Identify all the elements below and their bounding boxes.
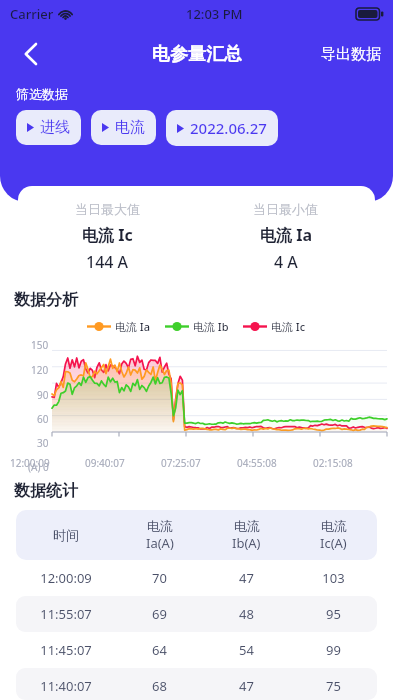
- staticText: 时间: [16, 527, 116, 543]
- staticText: 48: [203, 605, 290, 623]
- staticText: 09:40:07: [85, 456, 161, 470]
- staticText: 64: [116, 641, 203, 659]
- staticText: 数据分析: [14, 290, 78, 310]
- staticText: 95: [290, 605, 377, 623]
- staticText: 60: [37, 412, 49, 426]
- staticText: 47: [203, 677, 290, 691]
- button[interactable]: 进线: [16, 110, 81, 145]
- staticText: 12:03 PM: [186, 5, 243, 23]
- button[interactable]: 2022.06.27: [166, 110, 278, 146]
- staticText: 电参量汇总: [152, 43, 242, 66]
- button[interactable]: 导出数据: [309, 37, 393, 72]
- staticText: 99: [290, 641, 377, 659]
- staticText: 90: [37, 388, 49, 402]
- button[interactable]: 当日最大值: [18, 186, 375, 288]
- staticText: 12:00:09: [10, 456, 85, 470]
- staticText: 144 A: [86, 251, 129, 273]
- staticText: 4 A: [274, 251, 298, 273]
- button[interactable]: 电流: [91, 110, 156, 145]
- staticText: 电流: [234, 518, 260, 534]
- staticText: 数据统计: [14, 481, 78, 501]
- staticText: 75: [290, 677, 377, 691]
- staticText: 69: [116, 605, 203, 623]
- staticText: 04:55:08: [237, 456, 313, 470]
- staticText: Ic(A): [320, 534, 347, 552]
- staticText: 电流 Ia: [260, 224, 312, 246]
- button[interactable]: Back: [8, 32, 52, 76]
- staticText: 07:25:07: [161, 456, 237, 470]
- staticText: 30: [37, 436, 49, 450]
- staticText: 150: [31, 338, 49, 352]
- staticText: 进线: [40, 118, 70, 137]
- staticText: 0: [43, 460, 49, 473]
- staticText: 电流 Ia: [115, 319, 151, 334]
- staticText: 电流 Ic: [271, 319, 306, 334]
- staticText: (A): [28, 460, 43, 473]
- button[interactable]: 12:00:09: [16, 560, 377, 596]
- staticText: 103: [290, 569, 377, 587]
- staticText: 47: [203, 569, 290, 587]
- staticText: 电流: [115, 118, 145, 137]
- staticText: 当日最小值: [253, 201, 318, 217]
- staticText: 70: [116, 569, 203, 587]
- button[interactable]: 11:40:07: [16, 668, 377, 700]
- staticText: 电流: [147, 518, 173, 534]
- staticText: 电流 Ib: [193, 319, 229, 334]
- staticText: 2022.06.27: [190, 118, 267, 138]
- staticText: 电流 Ic: [82, 224, 133, 246]
- staticText: 当日最大值: [75, 201, 140, 217]
- staticText: 11:40:07: [16, 677, 116, 691]
- staticText: 筛选数据: [16, 86, 68, 102]
- staticText: 54: [203, 641, 290, 659]
- staticText: Ib(A): [232, 534, 261, 552]
- button[interactable]: 11:55:07: [16, 596, 377, 632]
- staticText: 68: [116, 677, 203, 691]
- staticText: 02:15:08: [313, 456, 389, 470]
- staticText: 导出数据: [321, 45, 381, 64]
- button[interactable]: 11:45:07: [16, 632, 377, 668]
- staticText: 120: [31, 363, 49, 377]
- staticText: Ia(A): [146, 534, 174, 552]
- staticText: 11:55:07: [16, 605, 116, 623]
- staticText: Carrier: [10, 5, 54, 23]
- staticText: 电流: [321, 518, 347, 534]
- staticText: 12:00:09: [16, 569, 116, 587]
- staticText: 11:45:07: [16, 641, 116, 659]
